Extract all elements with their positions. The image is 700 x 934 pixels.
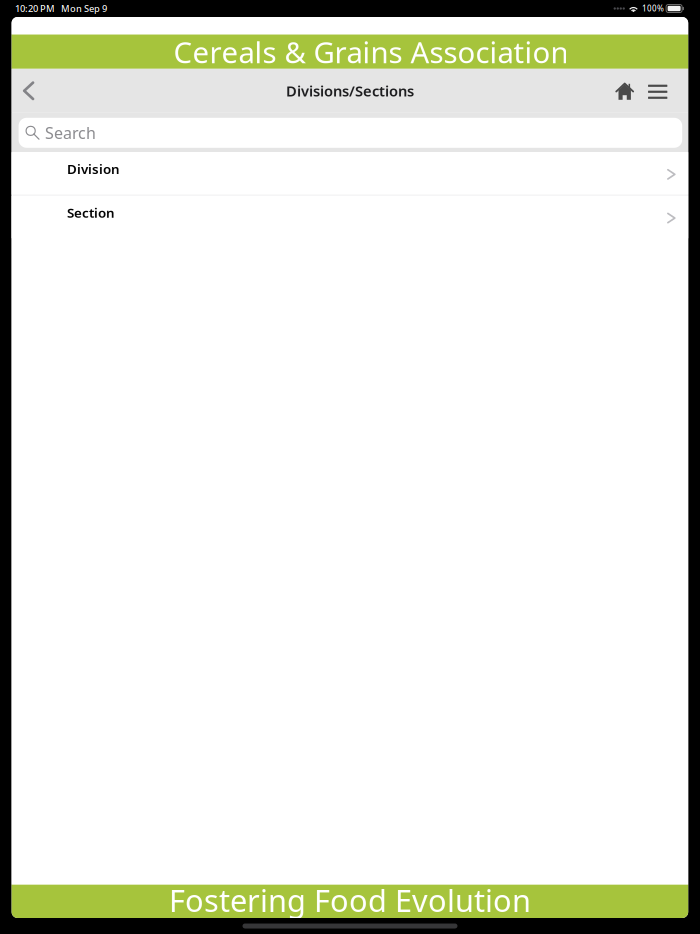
staticText: Divisions/Sections <box>286 81 414 101</box>
button[interactable]: Division <box>12 152 688 195</box>
staticText: 100% <box>642 3 664 14</box>
staticText: Division <box>67 160 120 178</box>
staticText: 10:20 PM <box>15 2 55 15</box>
button[interactable]: Home <box>608 69 641 113</box>
staticText: Search <box>45 122 96 143</box>
button[interactable]: Back <box>12 69 46 113</box>
staticText: Mon Sep 9 <box>61 2 107 15</box>
button[interactable]: Section <box>12 196 688 238</box>
staticText: Section <box>67 204 115 221</box>
staticText: Fostering Food Evolution <box>169 880 531 913</box>
button[interactable]: Menu <box>641 69 674 113</box>
staticText: Cereals & Grains Association <box>173 32 568 67</box>
